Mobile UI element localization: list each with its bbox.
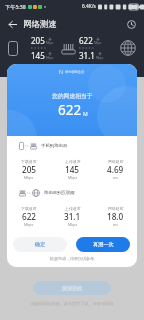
staticText: Mbps <box>24 222 34 227</box>
staticText: ms <box>113 222 118 227</box>
button[interactable]: 确定 <box>13 237 67 252</box>
staticText: Mbps <box>68 222 78 227</box>
button[interactable]: History <box>123 16 139 32</box>
staticText: 手机到路由器 <box>41 143 68 149</box>
staticText: 31.1 <box>79 50 95 61</box>
staticText: 下午5:38 <box>5 3 26 10</box>
staticText: 上传速度 <box>65 206 81 211</box>
staticText: 为确保测速准确，请先暂停下载、观看视频等 <box>30 301 114 306</box>
staticText: 网络测速 <box>23 19 57 30</box>
staticText: 31.1 <box>64 211 81 222</box>
staticText: 确定 <box>35 241 46 248</box>
staticText: Mbps <box>96 56 104 60</box>
staticText: 622 <box>22 211 37 222</box>
staticText: 下载速度 <box>21 159 37 164</box>
staticText: 205 <box>22 164 37 175</box>
staticText: 622 <box>79 35 93 46</box>
staticText: 路由器到互联网 <box>44 190 75 196</box>
staticText: 网络延时 <box>108 159 124 164</box>
button[interactable]: 测速完成 <box>33 281 111 295</box>
staticText: 205 <box>31 35 45 46</box>
staticText: M <box>83 110 88 117</box>
staticText: 测速完成 <box>62 285 82 291</box>
staticText: Mbps <box>94 41 102 45</box>
staticText: Mbps <box>68 175 78 180</box>
staticText: 网络延时 <box>108 206 124 211</box>
staticText: 145 <box>31 50 45 61</box>
staticText: 4.69 <box>107 164 124 175</box>
staticText: 华为智慧生活 <box>65 70 85 74</box>
staticText: ms <box>113 175 118 180</box>
staticText: 下载速度 <box>21 206 37 211</box>
button[interactable]: 再测一次 <box>76 237 130 252</box>
staticText: 6.4K/s <box>82 3 96 10</box>
staticText: 622 <box>58 101 82 119</box>
staticText: 您的网速相当于 <box>52 92 93 99</box>
button[interactable]: Back <box>4 16 21 33</box>
staticText: Mbps <box>24 175 34 180</box>
staticText: Mbps <box>46 41 54 45</box>
staticText: 检测完成，结果仅供参考 <box>7 256 137 261</box>
staticText: 18.0 <box>107 211 124 222</box>
staticText: Mbps <box>46 56 54 60</box>
staticText: 145 <box>65 164 80 175</box>
staticText: 再测一次 <box>93 241 114 248</box>
staticText: 上传速度 <box>65 159 81 164</box>
